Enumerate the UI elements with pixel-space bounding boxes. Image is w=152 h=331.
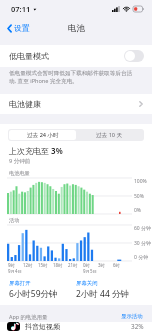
staticText: 6时 xyxy=(113,262,120,268)
staticText: 0% xyxy=(134,207,142,214)
staticText: 抖音短视频 xyxy=(25,322,60,331)
staticText: 21时 xyxy=(68,262,78,268)
staticText: 30 分钟 xyxy=(134,240,152,247)
staticText: 60 分钟 xyxy=(134,225,152,232)
button[interactable]: 抖音短视频 xyxy=(0,322,152,331)
staticText: 0 分钟 xyxy=(134,254,149,261)
staticText: 18时 xyxy=(53,262,63,268)
button[interactable]: 过去 10 天 xyxy=(76,130,143,140)
button[interactable]: Low Power Mode toggle xyxy=(124,50,144,62)
staticText: 07:11 xyxy=(11,4,31,14)
staticText: 9 分钟前 xyxy=(9,157,31,165)
staticText: 12时 xyxy=(23,262,33,268)
button[interactable]: 过去 24 小时 xyxy=(9,130,76,140)
button[interactable]: 显示活动 xyxy=(121,313,143,320)
staticText: 3时 xyxy=(98,262,105,268)
staticText: 屏幕关闭 xyxy=(76,280,98,287)
staticText: 32% xyxy=(131,322,144,331)
staticText: 过去 10 天 xyxy=(96,131,123,139)
staticText: 9月4日 xyxy=(8,268,22,274)
button[interactable]: 低电量模式 xyxy=(0,45,152,67)
staticText: 低电量模式 xyxy=(9,51,49,61)
staticText: 过去 24 小时 xyxy=(27,131,59,139)
staticText: 屏幕打开 xyxy=(9,280,31,287)
staticText: 电池健康 xyxy=(9,99,41,109)
staticText: 活动 xyxy=(9,217,20,224)
staticText: 电池电量 xyxy=(9,170,30,177)
staticText: 上次充电至 3% xyxy=(9,145,63,156)
staticText: 100% xyxy=(134,178,147,185)
staticText: App 的电池用量 xyxy=(9,313,48,320)
button[interactable]: 设置 xyxy=(5,21,32,35)
staticText: 50% xyxy=(134,193,144,200)
staticText: 6小时59分钟 xyxy=(9,288,58,300)
staticText: 设置 xyxy=(14,23,30,33)
staticText: 2小时 44 分钟 xyxy=(76,288,130,300)
staticText: 9月5日 xyxy=(83,268,97,274)
staticText: 0时 xyxy=(83,262,90,268)
staticText: 低电量模式会暂时降低如下载和邮件获取等后台活动, 直至 iPhone 完全充电。 xyxy=(9,70,138,85)
staticText: 电池 xyxy=(68,23,85,34)
staticText: 15时 xyxy=(38,262,48,268)
staticText: 显示活动 xyxy=(121,313,143,320)
button[interactable]: 电池健康 xyxy=(0,94,152,114)
staticText: 9时 xyxy=(8,262,15,268)
